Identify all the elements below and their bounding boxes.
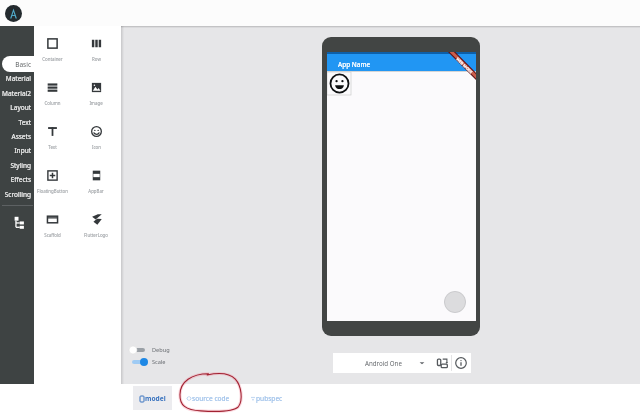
staticText: AppBar (88, 188, 104, 194)
button[interactable]: Icon widget (329, 73, 350, 94)
button[interactable]: model (133, 386, 172, 410)
button[interactable]: Widget tree (11, 215, 26, 230)
button[interactable]: source code (182, 386, 235, 410)
button[interactable]: Text (31, 126, 73, 154)
button[interactable]: App logo (5, 5, 22, 22)
staticText: Material (5, 74, 31, 83)
staticText: Scrolling (4, 190, 31, 199)
button[interactable]: Scaffold (31, 214, 73, 242)
staticText: FloatingButton (37, 188, 68, 194)
button[interactable]: Text (0, 115, 34, 129)
staticText: Icon (92, 144, 101, 150)
staticText: Basic (15, 60, 31, 69)
staticText: Scaffold (44, 232, 61, 238)
staticText: App Name (338, 60, 371, 69)
button[interactable]: AppBar (75, 170, 117, 198)
staticText: Text (48, 144, 57, 150)
button[interactable]: Container (31, 38, 73, 66)
staticText: Row (92, 56, 101, 62)
button[interactable]: pubspec (246, 386, 288, 410)
staticText: WEB MODE (455, 56, 474, 75)
button[interactable]: Input (0, 143, 34, 157)
button[interactable]: FloatingButton (31, 170, 73, 198)
staticText: Styling (10, 161, 31, 170)
staticText: Scale (152, 358, 166, 366)
button[interactable]: FlutterLogo (75, 214, 117, 242)
staticText: Text (18, 118, 31, 127)
button[interactable]: Info (451, 353, 471, 373)
staticText: Input (14, 146, 31, 155)
button[interactable]: Floating action button (444, 291, 466, 313)
button[interactable]: Row (75, 38, 117, 66)
staticText: source code (192, 394, 230, 403)
staticText: Android One (365, 359, 402, 367)
button[interactable]: Android One (333, 353, 433, 373)
button[interactable]: Column (31, 82, 73, 110)
button[interactable]: Effects (0, 172, 34, 186)
button[interactable]: App Name (327, 54, 476, 71)
staticText: pubspec (256, 394, 283, 403)
button[interactable]: Assets (0, 129, 34, 143)
staticText: Assets (11, 132, 31, 141)
staticText: Layout (10, 103, 31, 112)
staticText: Container (42, 56, 63, 62)
staticText: FlutterLogo (84, 232, 108, 238)
button[interactable]: Icon (75, 126, 117, 154)
button[interactable]: Image (75, 82, 117, 110)
staticText: Column (44, 100, 61, 106)
staticText: Debug (152, 346, 170, 354)
button[interactable]: Rotate device (433, 353, 451, 373)
button[interactable]: Scrolling (0, 187, 34, 201)
button[interactable]: Styling (0, 158, 34, 172)
button[interactable]: Debug (129, 344, 170, 356)
staticText: Image (89, 100, 103, 106)
staticText: model (145, 394, 166, 403)
button[interactable]: Basic (0, 57, 34, 71)
staticText: Material2 (2, 89, 31, 98)
staticText: Effects (10, 175, 31, 184)
button[interactable]: Material2 (0, 86, 34, 100)
button[interactable]: Layout (0, 100, 34, 114)
button[interactable]: Material (0, 71, 34, 85)
button[interactable]: Scale (129, 356, 166, 368)
